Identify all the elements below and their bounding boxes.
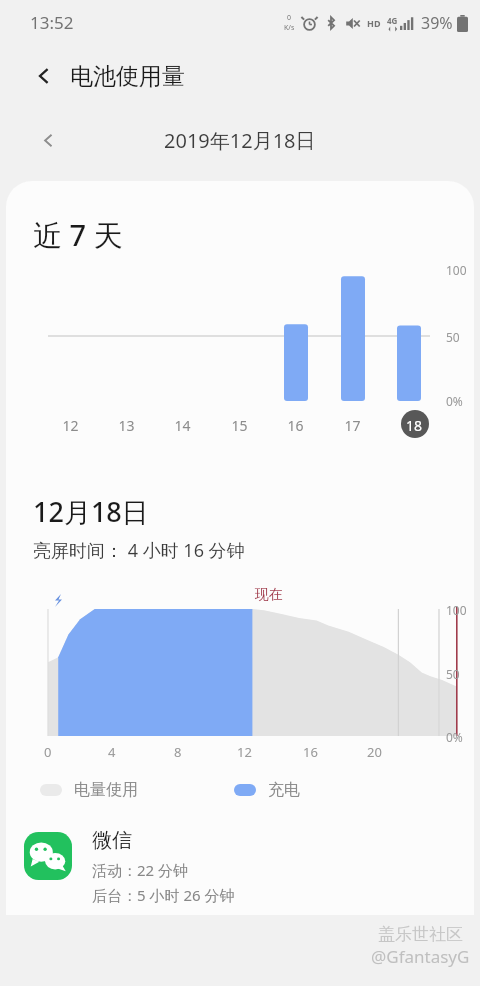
staticText: 50	[446, 666, 460, 682]
staticText: 电池使用量	[70, 62, 185, 91]
staticText: 50	[446, 329, 460, 345]
staticText: 13:52	[30, 11, 74, 34]
staticText: 0%	[446, 393, 463, 409]
staticText: 12	[62, 416, 79, 435]
staticText: 17	[344, 416, 361, 435]
staticText: 电量使用	[74, 780, 138, 800]
staticText: 近 7 天	[33, 215, 123, 255]
staticText: 20	[367, 743, 382, 761]
staticText: 活动：22 分钟	[92, 860, 189, 880]
staticText: 2019年12月18日	[164, 127, 316, 154]
staticText: 100	[446, 262, 467, 278]
staticText: 充电	[268, 780, 300, 800]
staticText: 0%	[446, 729, 463, 745]
staticText: 15	[231, 416, 248, 435]
staticText: 现在	[255, 586, 283, 604]
staticText: 39%	[421, 12, 453, 34]
staticText: 16	[303, 743, 318, 761]
staticText: 8	[174, 743, 182, 761]
button[interactable]: 微信	[6, 822, 474, 915]
staticText: 12	[237, 743, 252, 761]
staticText: @GfantasyG	[371, 945, 470, 968]
staticText: 16	[287, 416, 304, 435]
staticText: K/s	[284, 23, 295, 33]
staticText: 0	[44, 743, 52, 761]
staticText: 盖乐世社区	[378, 924, 463, 945]
button[interactable]: Previous day	[28, 120, 68, 160]
staticText: 14	[174, 416, 191, 435]
staticText: 4	[108, 743, 116, 761]
staticText: 亮屏时间： 4 小时 16 分钟	[33, 538, 245, 563]
staticText: 4G	[387, 15, 398, 26]
staticText: 微信	[92, 828, 132, 853]
button[interactable]: Back	[22, 54, 66, 98]
staticText: 0	[287, 13, 292, 23]
staticText: 后台：5 小时 26 分钟	[92, 885, 235, 905]
staticText: 12月18日	[33, 493, 149, 530]
staticText: 13	[118, 416, 135, 435]
staticText: 18	[406, 416, 423, 435]
staticText: HD	[367, 17, 381, 29]
staticText: 100	[446, 602, 467, 618]
